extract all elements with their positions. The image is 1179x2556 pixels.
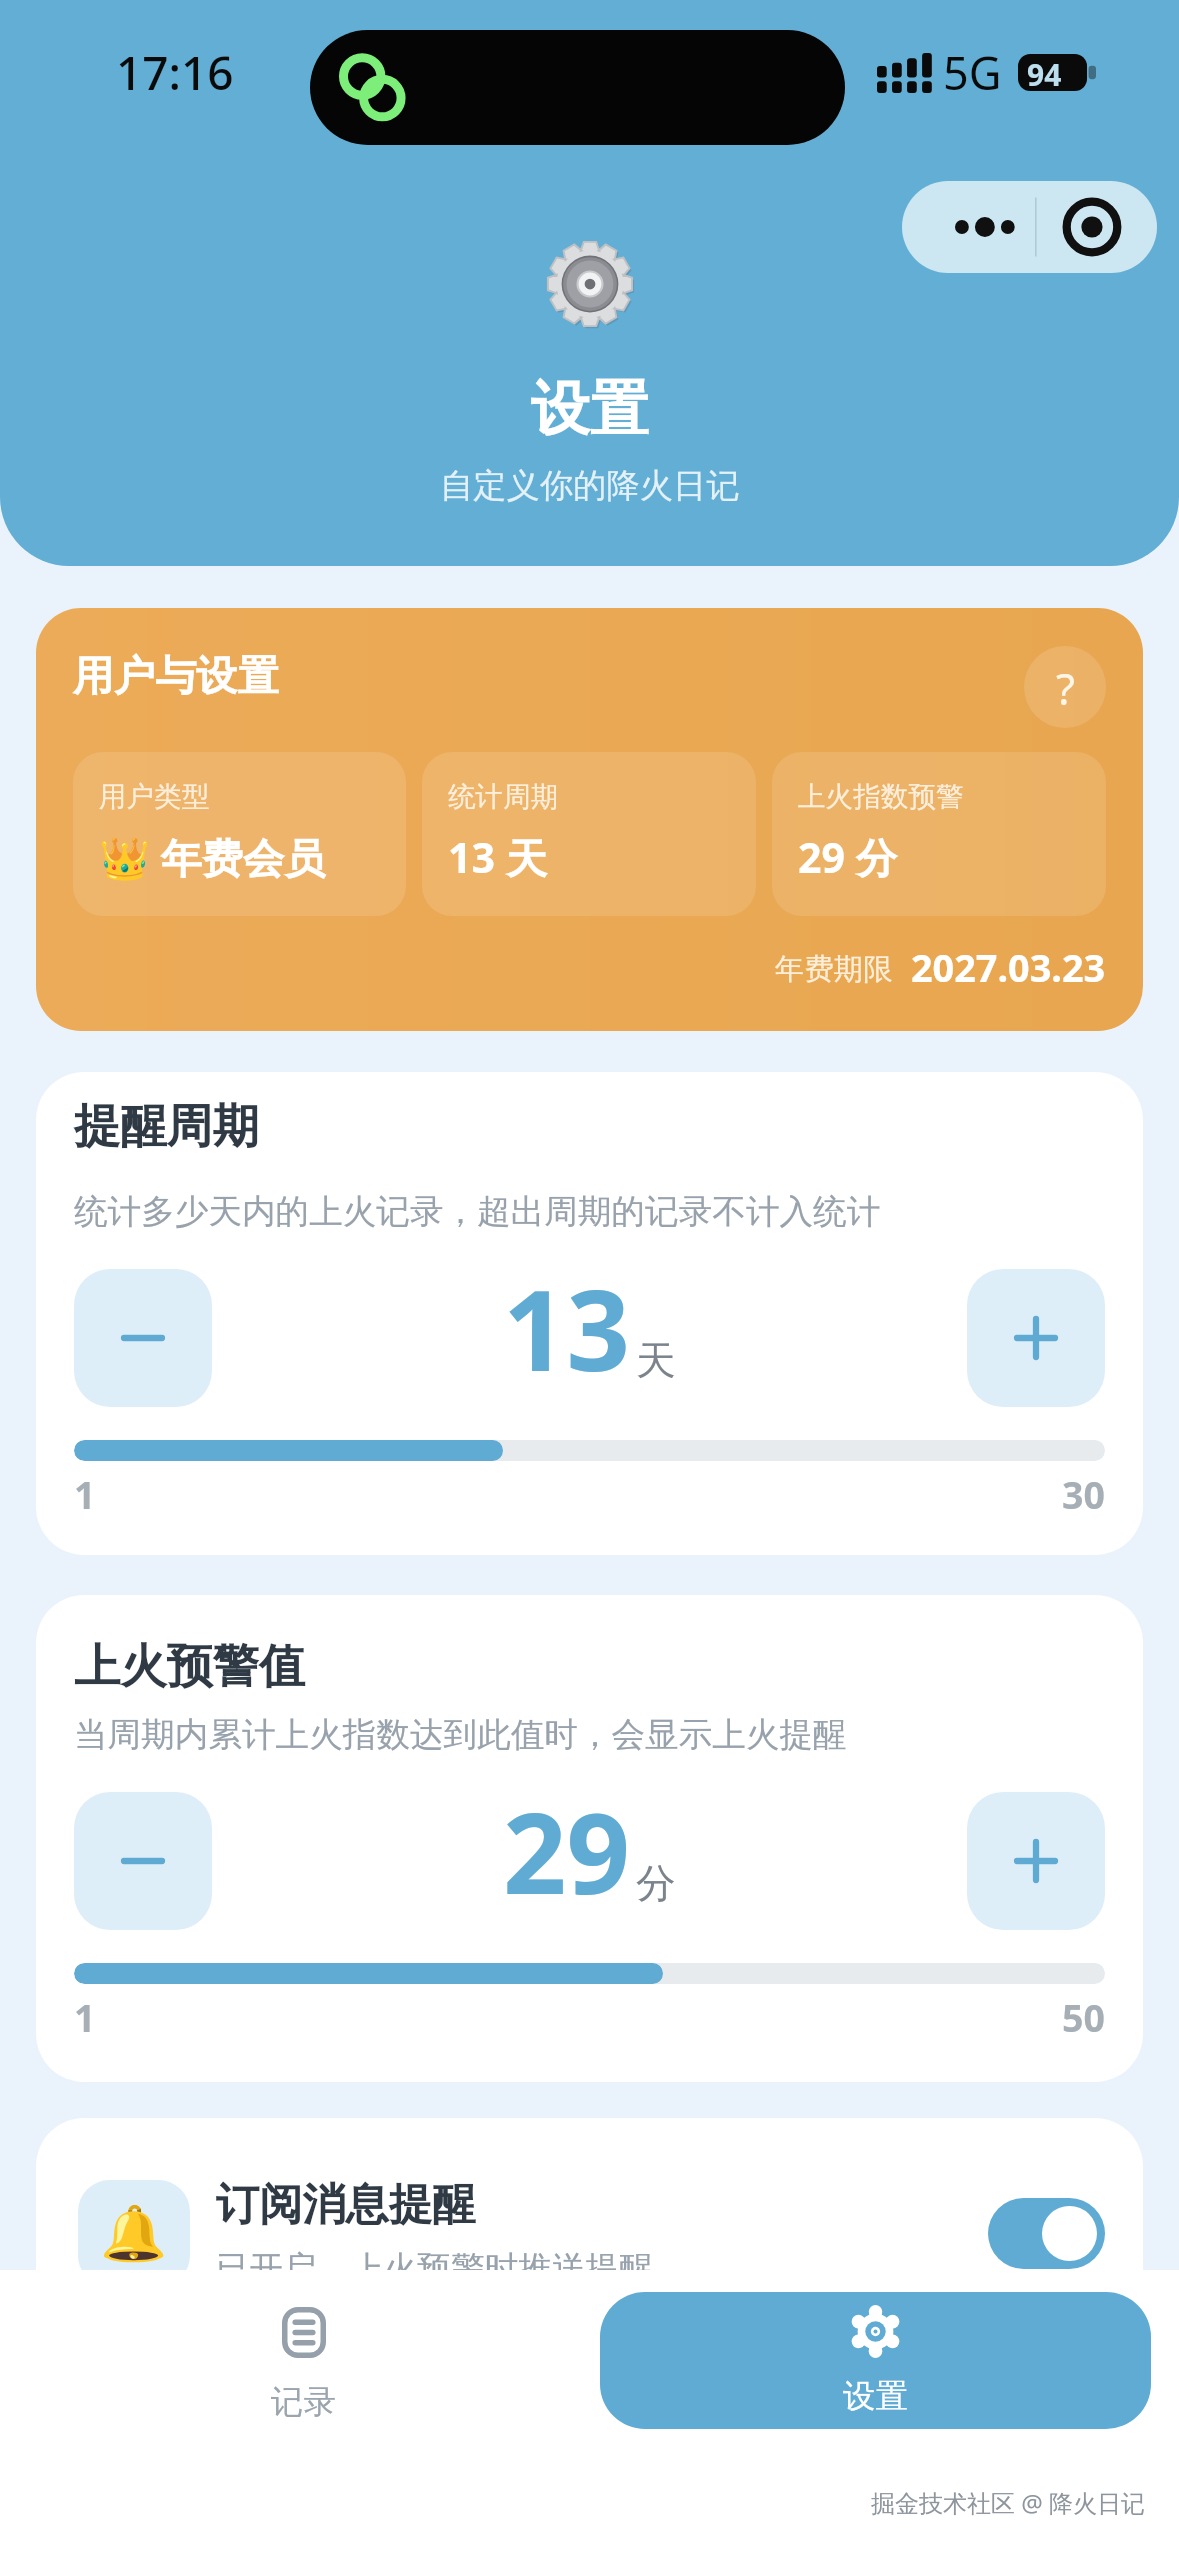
staticText: 🔔 [100, 2202, 168, 2265]
button[interactable]: 用户类型 [73, 752, 406, 916]
staticText: 29 [503, 1775, 630, 1926]
staticText: 记录 [271, 2382, 336, 2423]
staticText: 50 [1062, 1992, 1105, 2043]
button[interactable]: 拖动条 [74, 1963, 1105, 1984]
staticText: 提醒周期 [74, 1098, 259, 1156]
staticText: 用户与设置 [73, 650, 279, 702]
staticText: 统计多少天内的上火记录，超出周期的记录不计入统计 [74, 1191, 881, 1233]
staticText: ? [1056, 658, 1075, 717]
staticText: 上火指数预警 [798, 779, 964, 814]
staticText: 年费期限 [775, 951, 893, 988]
staticText: 29 分 [798, 829, 897, 885]
staticText: 用户类型 [99, 779, 210, 814]
staticText: 13 天 [448, 829, 547, 885]
staticText: 94 [1027, 54, 1062, 91]
button[interactable]: 🔔 [36, 2118, 1143, 2327]
staticText: 统计周期 [448, 779, 559, 814]
button[interactable]: 统计周期 [422, 752, 756, 916]
staticText: 分 [636, 1859, 676, 1909]
staticText: 1 [74, 1992, 96, 2043]
staticText: 2027.03.23 [911, 942, 1106, 993]
staticText: 当周期内累计上火指数达到此值时，会显示上火提醒 [74, 1714, 847, 1756]
button[interactable]: 拖动条 [74, 1440, 1105, 1461]
staticText: 1 [74, 1469, 96, 1520]
staticText: 5G [943, 42, 1002, 103]
staticText: 掘金技术社区 @ 降火日记 [871, 2486, 1146, 2519]
staticText: 30 [1062, 1469, 1105, 1520]
staticText: 👑 年费会员 [99, 829, 326, 885]
button[interactable]: 更多 [902, 181, 1157, 273]
staticText: 自定义你的降火日记 [440, 465, 740, 507]
staticText: 天 [636, 1336, 676, 1386]
staticText: 设置 [531, 372, 649, 446]
staticText: 13 [503, 1252, 630, 1403]
button[interactable]: 设置 [600, 2292, 1151, 2429]
button[interactable]: 增加 [967, 1269, 1105, 1407]
staticText: 设置 [843, 2376, 908, 2417]
button[interactable]: 记录 [186, 2291, 420, 2438]
button[interactable]: 减少 [74, 1792, 212, 1930]
staticText: 订阅消息提醒 [216, 2177, 476, 2231]
button[interactable]: 增加 [967, 1792, 1105, 1930]
button[interactable]: 帮助 [1024, 646, 1106, 728]
staticText: 上火预警值 [74, 1638, 305, 1696]
button[interactable]: 用户与设置 [36, 608, 1143, 1031]
staticText: 已开启，上火预警时推送提醒 [216, 2248, 653, 2290]
button[interactable]: 减少 [74, 1269, 212, 1407]
button[interactable]: 订阅开关 [988, 2198, 1105, 2269]
button[interactable]: 上火指数预警 [772, 752, 1106, 916]
staticText: 17:16 [116, 41, 234, 104]
